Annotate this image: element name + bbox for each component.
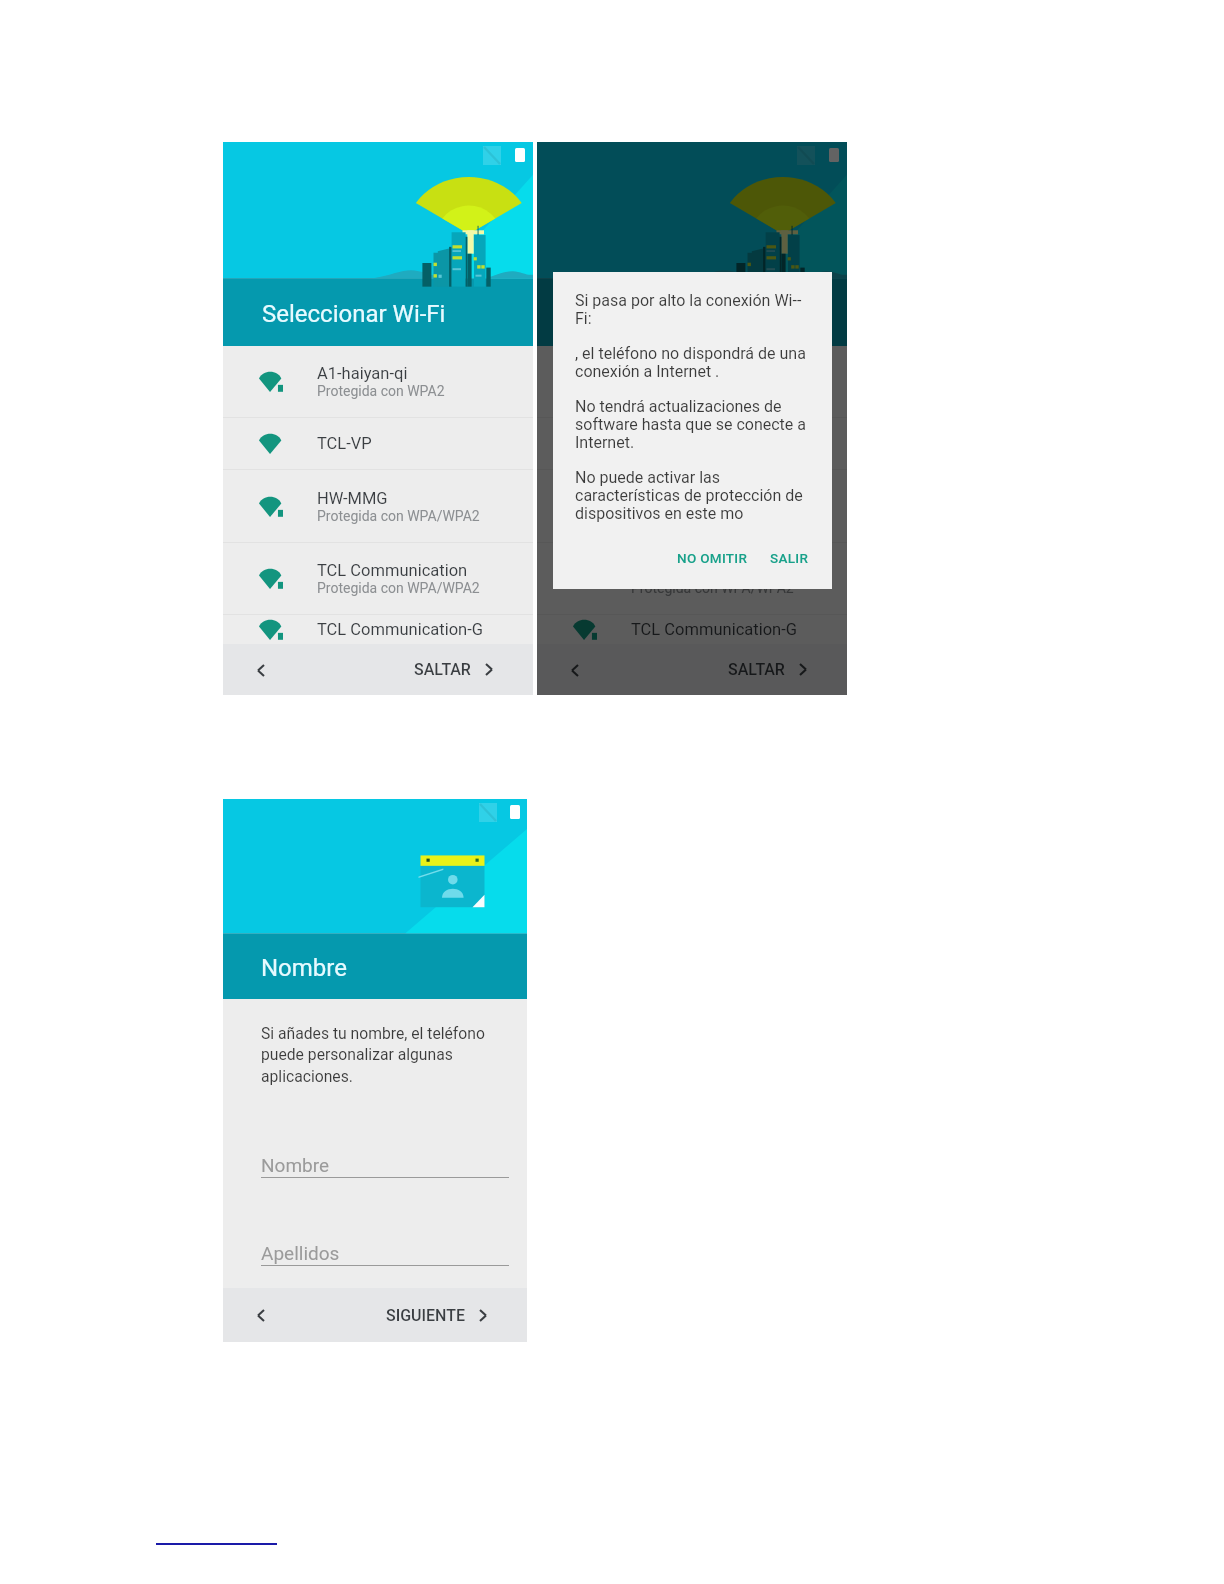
button[interactable]: TCL Communication (223, 543, 533, 614)
staticText: , el teléfono no dispondrá de una conexi… (575, 344, 806, 381)
staticText: Protegida con WPA/WPA2 (317, 580, 480, 596)
button[interactable]: SALTAR (728, 660, 807, 679)
button[interactable]: TCL-VP (223, 418, 533, 469)
staticText: Nombre (261, 1154, 330, 1176)
button[interactable]: TCL Communication-G (537, 615, 847, 644)
staticText: Seleccionar Wi-Fi (576, 300, 760, 328)
staticText: A1-haiyan-qi (631, 364, 722, 383)
staticText: No tendrá actualizaciones de software ha… (575, 397, 806, 452)
staticText: Protegida con WPA/WPA2 (317, 508, 480, 524)
button[interactable]: Apellidos (261, 1242, 509, 1266)
button[interactable]: Atrás (251, 1305, 271, 1325)
button[interactable]: Atrás (565, 660, 585, 680)
staticText: SALIR (770, 550, 809, 566)
staticText: Protegida con WPA2 (317, 383, 445, 399)
staticText: TCL Communication-G (631, 620, 797, 639)
staticText: No puede activar las características de … (575, 468, 803, 523)
button[interactable]: SALTAR (414, 660, 493, 679)
staticText: HW-MMG (631, 489, 702, 508)
staticText: Si añades tu nombre, el teléfono puede p… (261, 1024, 485, 1086)
button[interactable]: A1-haiyan-qi (223, 346, 533, 417)
staticText: TCL-VP (317, 434, 372, 453)
staticText: TCL Communication (317, 561, 468, 580)
staticText: Nombre (261, 954, 347, 982)
staticText: SALTAR (414, 660, 471, 679)
button[interactable]: SIGUIENTE (386, 1306, 487, 1325)
button[interactable]: Atrás (251, 660, 271, 680)
staticText: Apellidos (261, 1242, 340, 1264)
staticText: Protegida con WPA/WPA2 (631, 580, 794, 596)
staticText: A1-haiyan-qi (317, 364, 408, 383)
button[interactable]: NO OMITIR (672, 545, 753, 571)
staticText: SALTAR (728, 660, 785, 679)
button[interactable]: HW-MMG (223, 470, 533, 542)
button[interactable]: Nombre (261, 1154, 509, 1178)
staticText: TCL Communication-G (317, 620, 483, 639)
staticText: Seleccionar Wi-Fi (262, 300, 446, 328)
staticText: Si pasa por alto la conexión Wi-- Fi: (575, 291, 802, 328)
button[interactable]: SALIR (765, 545, 814, 571)
button[interactable]: TCL Communication (537, 543, 847, 614)
staticText: HW-MMG (317, 489, 388, 508)
staticText: NO OMITIR (677, 550, 748, 566)
button[interactable]: A1-haiyan-qi (537, 346, 847, 417)
staticText: Protegida con WPA/WPA2 (631, 508, 794, 524)
staticText: TCL Communication (631, 561, 782, 580)
button[interactable]: TCL Communication-G (223, 615, 533, 644)
staticText: SIGUIENTE (386, 1306, 465, 1325)
button[interactable]: HW-MMG (537, 470, 847, 542)
staticText: TCL-VP (631, 434, 686, 453)
button[interactable]: TCL-VP (537, 418, 847, 469)
